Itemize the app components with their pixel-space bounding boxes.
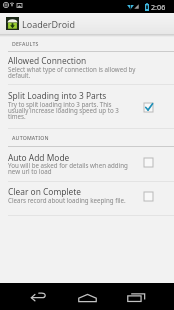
- button[interactable]: Toggle setting: [144, 103, 153, 112]
- staticText: Split Loading into 3 Parts: [8, 90, 107, 101]
- button[interactable]: Toggle setting: [144, 158, 153, 167]
- button[interactable]: Toggle setting: [144, 192, 153, 201]
- button[interactable]: Back: [18, 283, 58, 310]
- button[interactable]: [0, 53, 174, 84]
- staticText: DEFAULTS: [12, 40, 39, 47]
- staticText: Allowed Connection: [8, 55, 87, 66]
- staticText: Try to split loading into 3 parts. This …: [8, 100, 129, 121]
- staticText: Select what type of connection is allowe…: [8, 65, 144, 80]
- staticText: Clears record about loading keeping file…: [8, 196, 126, 204]
- button[interactable]: [0, 150, 174, 181]
- staticText: LoaderDroid: [22, 18, 75, 30]
- button[interactable]: Home: [67, 283, 107, 310]
- staticText: Auto Add Mode: [8, 152, 70, 163]
- button[interactable]: [0, 184, 174, 215]
- button[interactable]: Recent apps: [116, 283, 156, 310]
- staticText: Clear on Complete: [8, 186, 82, 197]
- staticText: AUTOMATION: [12, 134, 49, 141]
- staticText: You will be asked for details when addin…: [8, 161, 129, 176]
- button[interactable]: [0, 97, 174, 128]
- staticText: 2:06: [151, 2, 166, 12]
